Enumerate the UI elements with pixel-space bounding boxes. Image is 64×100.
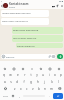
button[interactable]: Shift xyxy=(0,85,11,92)
button[interactable]: mit on eintr wark en xyxy=(12,35,63,42)
staticText: ?123 xyxy=(3,95,8,98)
staticText: . xyxy=(49,94,50,98)
button[interactable]: Bericht xyxy=(1,54,56,59)
button[interactable]: y xyxy=(34,71,40,78)
button[interactable]: v xyxy=(30,85,36,92)
button[interactable]: e xyxy=(14,71,21,78)
button[interactable]: r xyxy=(21,71,28,78)
button[interactable]: , xyxy=(16,92,22,100)
staticText: q xyxy=(3,73,5,77)
staticText: s xyxy=(10,80,12,84)
staticText: k xyxy=(51,80,53,84)
staticText: c xyxy=(26,87,28,91)
staticText: online xyxy=(9,6,15,9)
button[interactable]: s xyxy=(8,78,14,85)
button[interactable]: Back xyxy=(0,4,3,7)
staticText: Bericht xyxy=(6,55,15,58)
staticText: ultimo werkeren bei hele xyxy=(2,11,31,14)
staticText: l xyxy=(58,80,59,84)
staticText: mit on eintr wark en xyxy=(13,36,37,39)
staticText: o xyxy=(54,73,56,77)
staticText: h xyxy=(37,80,39,84)
button[interactable]: i xyxy=(46,71,52,78)
button[interactable]: x xyxy=(18,85,24,92)
button[interactable]: k xyxy=(48,78,55,85)
button[interactable]: m xyxy=(48,85,54,92)
button[interactable]: Dank taralen te xyxy=(16,43,63,48)
staticText: m xyxy=(50,87,53,91)
button[interactable]: g xyxy=(27,78,34,85)
staticText: y xyxy=(36,73,38,77)
button[interactable]: bilde meld mekrugt ig xyxy=(12,27,63,34)
button[interactable]: Sticker xyxy=(18,66,27,71)
button[interactable]: Voice message xyxy=(57,54,63,59)
button[interactable]: w xyxy=(7,71,14,78)
staticText: Kontakt naam xyxy=(9,2,29,6)
button[interactable]: f xyxy=(20,78,27,85)
button[interactable]: o xyxy=(52,71,58,78)
button[interactable]: n xyxy=(42,85,48,92)
staticText: u xyxy=(42,73,44,77)
button[interactable]: Clipboard xyxy=(27,66,36,71)
staticText: g xyxy=(30,80,32,84)
button[interactable]: z xyxy=(11,85,18,92)
button[interactable]: GIF xyxy=(9,66,18,71)
button[interactable]: c xyxy=(24,85,30,92)
button[interactable]: p xyxy=(58,71,64,78)
button[interactable]: Backspace xyxy=(54,85,64,92)
button[interactable]: Settings xyxy=(36,66,45,71)
button[interactable]: t xyxy=(28,71,34,78)
button[interactable]: More xyxy=(54,66,63,71)
button[interactable]: u xyxy=(40,71,46,78)
button[interactable]: Search xyxy=(1,66,9,71)
button[interactable]: vefte ullen stal klaar te xyxy=(1,18,49,25)
button[interactable]: Enter xyxy=(53,93,63,99)
staticText: n xyxy=(44,87,46,91)
staticText: Dank taralen te xyxy=(17,44,35,47)
button[interactable]: a xyxy=(2,78,8,85)
staticText: v xyxy=(32,87,34,91)
staticText: t xyxy=(30,73,32,77)
staticText: vefte ullen stal klaar te xyxy=(2,19,28,22)
button[interactable]: l xyxy=(55,78,62,85)
button[interactable]: b xyxy=(36,85,42,92)
button[interactable]: ?123 xyxy=(0,92,10,100)
button[interactable]: d xyxy=(14,78,20,85)
button[interactable]: Translate xyxy=(45,66,54,71)
staticText: f xyxy=(23,80,25,84)
button[interactable]: More options xyxy=(60,4,63,7)
staticText: , xyxy=(19,94,20,98)
button[interactable]: j xyxy=(41,78,48,85)
staticText: d xyxy=(16,80,18,84)
staticText: j xyxy=(44,80,45,84)
button[interactable]: q xyxy=(0,71,7,78)
button[interactable]: h xyxy=(34,78,41,85)
staticText: b xyxy=(38,87,40,91)
staticText: w xyxy=(9,73,12,77)
staticText: a xyxy=(4,80,6,84)
staticText: z xyxy=(14,87,16,91)
button[interactable]: Video call xyxy=(51,4,55,8)
staticText: p xyxy=(60,73,62,77)
staticText: x xyxy=(20,87,22,91)
button[interactable]: Contact photo xyxy=(3,3,8,8)
staticText: e xyxy=(17,73,19,77)
button[interactable]: ultimo werkeren bei hele xyxy=(1,10,49,17)
staticText: r xyxy=(24,73,26,77)
button[interactable]: Call xyxy=(56,4,60,8)
staticText: i xyxy=(49,73,50,77)
staticText: bilde meld mekrugt ig xyxy=(13,28,39,31)
button[interactable]: Emoji xyxy=(10,92,16,100)
